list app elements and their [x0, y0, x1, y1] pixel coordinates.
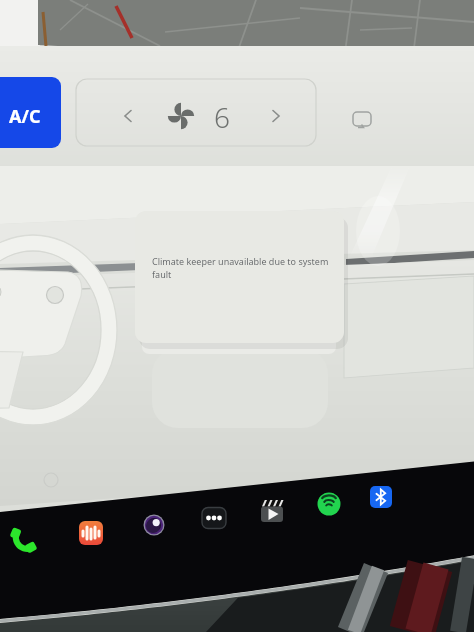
button[interactable]: Camera — [138, 509, 170, 541]
button[interactable]: Increase fan speed — [250, 88, 304, 142]
button[interactable]: Voice recorder — [75, 517, 107, 549]
button[interactable]: More apps — [198, 502, 230, 534]
button[interactable]: Phone — [9, 524, 41, 556]
button[interactable]: Rear window defrost — [340, 95, 386, 141]
button[interactable]: Bluetooth — [365, 481, 397, 513]
button[interactable]: Video player — [256, 495, 288, 527]
button[interactable]: Decrease fan speed — [102, 88, 156, 142]
button[interactable]: Air conditioning — [0, 77, 61, 148]
button[interactable]: Climate keeper unavailable due to system… — [135, 211, 344, 343]
button[interactable]: Spotify — [313, 488, 345, 520]
